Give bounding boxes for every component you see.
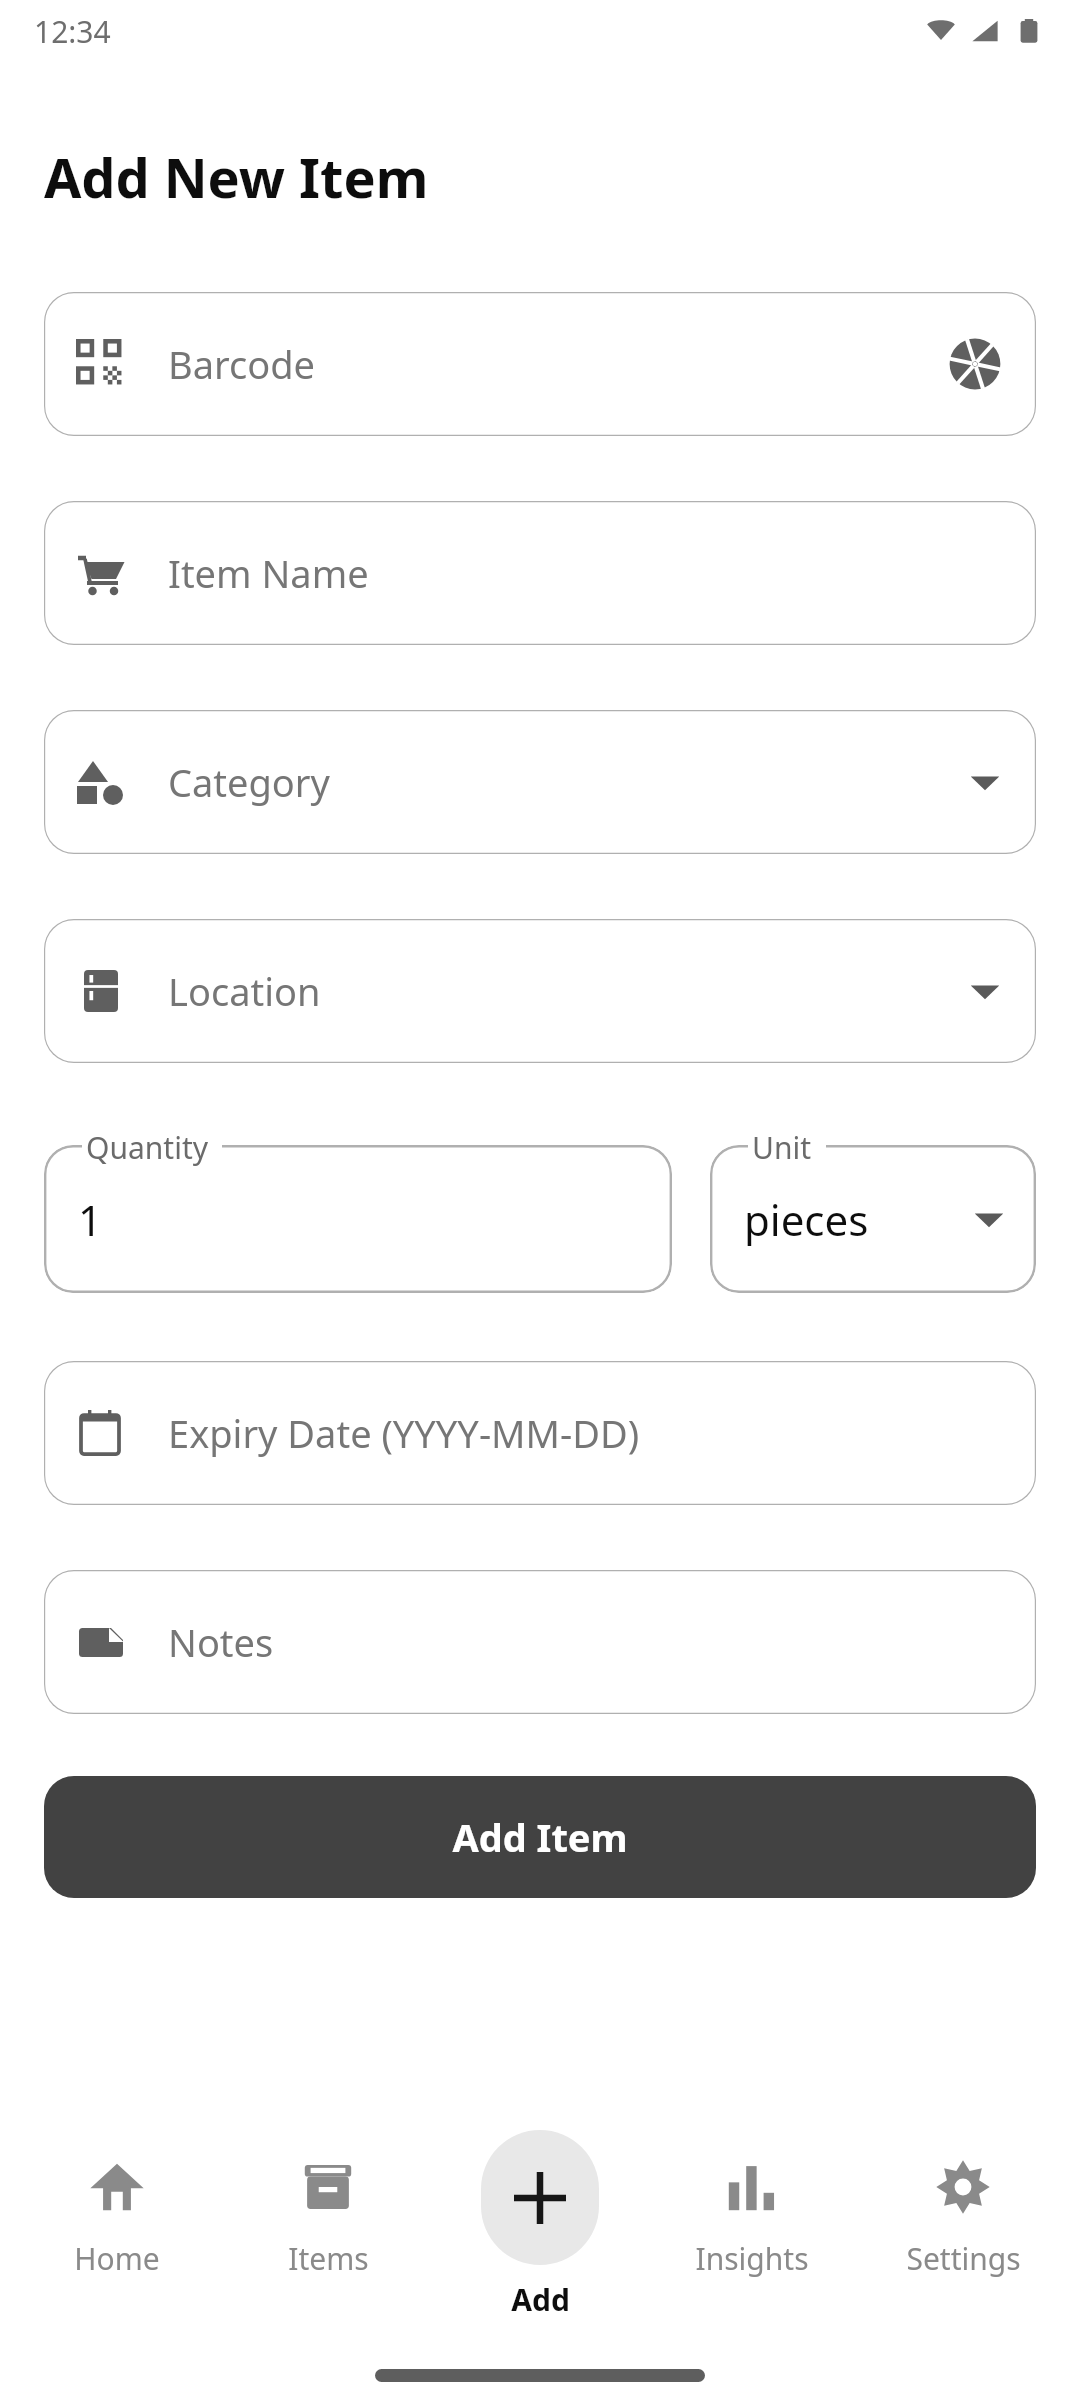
button[interactable]: Barcode: [44, 292, 1036, 436]
staticText: Location: [168, 965, 321, 1017]
staticText: Quantity: [86, 1127, 209, 1168]
button[interactable]: Expiry Date (YYYY-MM-DD): [44, 1361, 1036, 1505]
button[interactable]: Add Item: [44, 1776, 1036, 1898]
staticText: Add New Item: [44, 140, 429, 214]
button[interactable]: Home: [22, 2130, 212, 2279]
staticText: 12:34: [34, 11, 111, 52]
button[interactable]: Add: [445, 2130, 635, 2320]
staticText: Insights: [695, 2238, 809, 2279]
staticText: Item Name: [168, 547, 369, 599]
staticText: Notes: [168, 1616, 274, 1668]
staticText: Settings: [906, 2238, 1021, 2279]
button[interactable]: pieces: [710, 1145, 1036, 1293]
button[interactable]: Category: [44, 710, 1036, 854]
staticText: pieces: [744, 1191, 869, 1248]
button[interactable]: Settings: [868, 2130, 1058, 2279]
staticText: Category: [168, 756, 330, 808]
button[interactable]: Insights: [657, 2130, 847, 2279]
staticText: Items: [288, 2238, 369, 2279]
button[interactable]: Location: [44, 919, 1036, 1063]
button[interactable]: 1: [44, 1145, 672, 1293]
button[interactable]: Item Name: [44, 501, 1036, 645]
button[interactable]: Notes: [44, 1570, 1036, 1714]
staticText: Add: [511, 2279, 570, 2320]
staticText: 1: [78, 1191, 103, 1248]
staticText: Barcode: [168, 338, 315, 390]
staticText: Add Item: [452, 1811, 628, 1863]
staticText: Unit: [752, 1127, 812, 1168]
staticText: Home: [74, 2238, 160, 2279]
button[interactable]: Items: [233, 2130, 423, 2279]
staticText: Expiry Date (YYYY-MM-DD): [168, 1407, 640, 1459]
